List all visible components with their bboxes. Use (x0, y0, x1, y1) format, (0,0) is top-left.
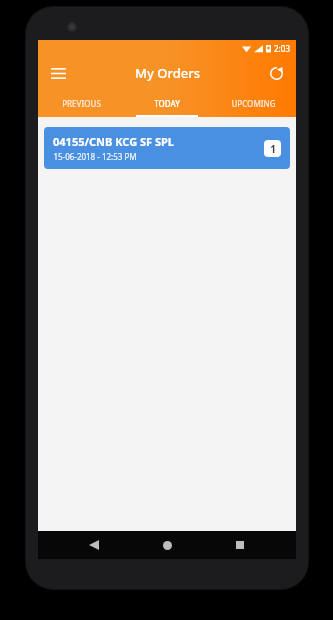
staticText: TODAY (154, 98, 180, 109)
staticText: PREVIOUS (62, 98, 101, 109)
button[interactable]: Recent apps (223, 531, 257, 559)
staticText: 15-06-2018 - 12:53 PM (53, 151, 137, 162)
button[interactable]: Refresh (262, 59, 290, 87)
button[interactable]: Home (150, 531, 184, 559)
button[interactable]: PREVIOUS (38, 89, 124, 117)
staticText: 1 (270, 142, 276, 156)
staticText: UPCOMING (231, 98, 276, 109)
staticText: 04155/CNB KCG SF SPL (53, 134, 174, 149)
button[interactable]: Back (77, 531, 111, 559)
staticText: My Orders (135, 64, 200, 82)
button[interactable]: 04155/CNB KCG SF SPL (44, 127, 290, 169)
staticText: 2:03 (274, 43, 290, 54)
button[interactable]: TODAY (124, 89, 210, 117)
button[interactable]: UPCOMING (210, 89, 296, 117)
button[interactable]: Open navigation menu (44, 59, 72, 87)
